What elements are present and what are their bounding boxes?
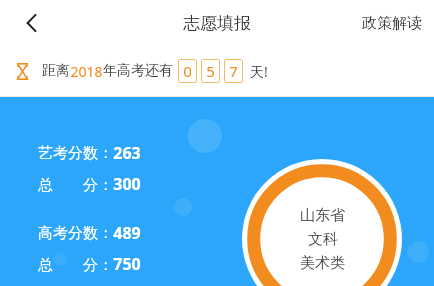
- staticText: 美术类: [300, 254, 345, 273]
- staticText: 艺考分数：: [38, 144, 113, 163]
- staticText: 2018: [70, 62, 103, 81]
- staticText: 总 分：: [38, 174, 113, 194]
- button[interactable]: 政策解读: [358, 8, 426, 39]
- staticText: 5: [206, 61, 215, 81]
- staticText: 文科: [308, 230, 338, 249]
- staticText: 263: [113, 142, 141, 164]
- staticText: 年高考还有: [103, 62, 173, 80]
- staticText: 志愿填报: [183, 13, 251, 34]
- staticText: 高考分数：: [38, 224, 113, 243]
- staticText: 750: [113, 253, 141, 275]
- staticText: 距离: [42, 62, 70, 80]
- staticText: 7: [229, 61, 238, 81]
- staticText: 山东省: [300, 206, 345, 225]
- staticText: 天!: [250, 62, 268, 81]
- staticText: 总 分：: [38, 254, 113, 274]
- staticText: 政策解读: [362, 14, 422, 33]
- staticText: 300: [113, 173, 141, 195]
- staticText: 489: [113, 222, 141, 244]
- button[interactable]: 距离: [0, 46, 434, 96]
- button[interactable]: Back: [14, 5, 50, 41]
- button[interactable]: 山东省: [242, 159, 402, 286]
- staticText: 0: [183, 61, 192, 81]
